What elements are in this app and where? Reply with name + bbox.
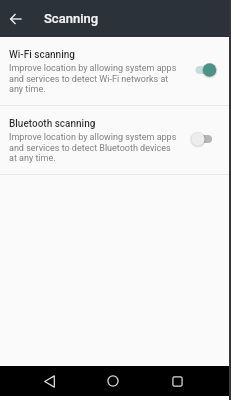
staticText: Bluetooth scanning [9, 118, 96, 130]
button[interactable]: Recent apps [145, 366, 209, 396]
staticText: Improve location by allowing system apps… [9, 132, 178, 163]
staticText: Scanning [44, 11, 99, 26]
staticText: Improve location by allowing system apps… [9, 63, 178, 94]
button[interactable]: Switch off [194, 127, 228, 151]
button[interactable]: Navigate up [5, 8, 27, 30]
button[interactable]: Switch on [194, 58, 228, 82]
button[interactable]: Back [17, 366, 81, 396]
button[interactable]: Home [81, 366, 145, 396]
button[interactable]: Wi-Fi scanning [0, 37, 231, 105]
button[interactable]: Bluetooth scanning [0, 106, 231, 174]
staticText: Wi-Fi scanning [9, 49, 75, 61]
